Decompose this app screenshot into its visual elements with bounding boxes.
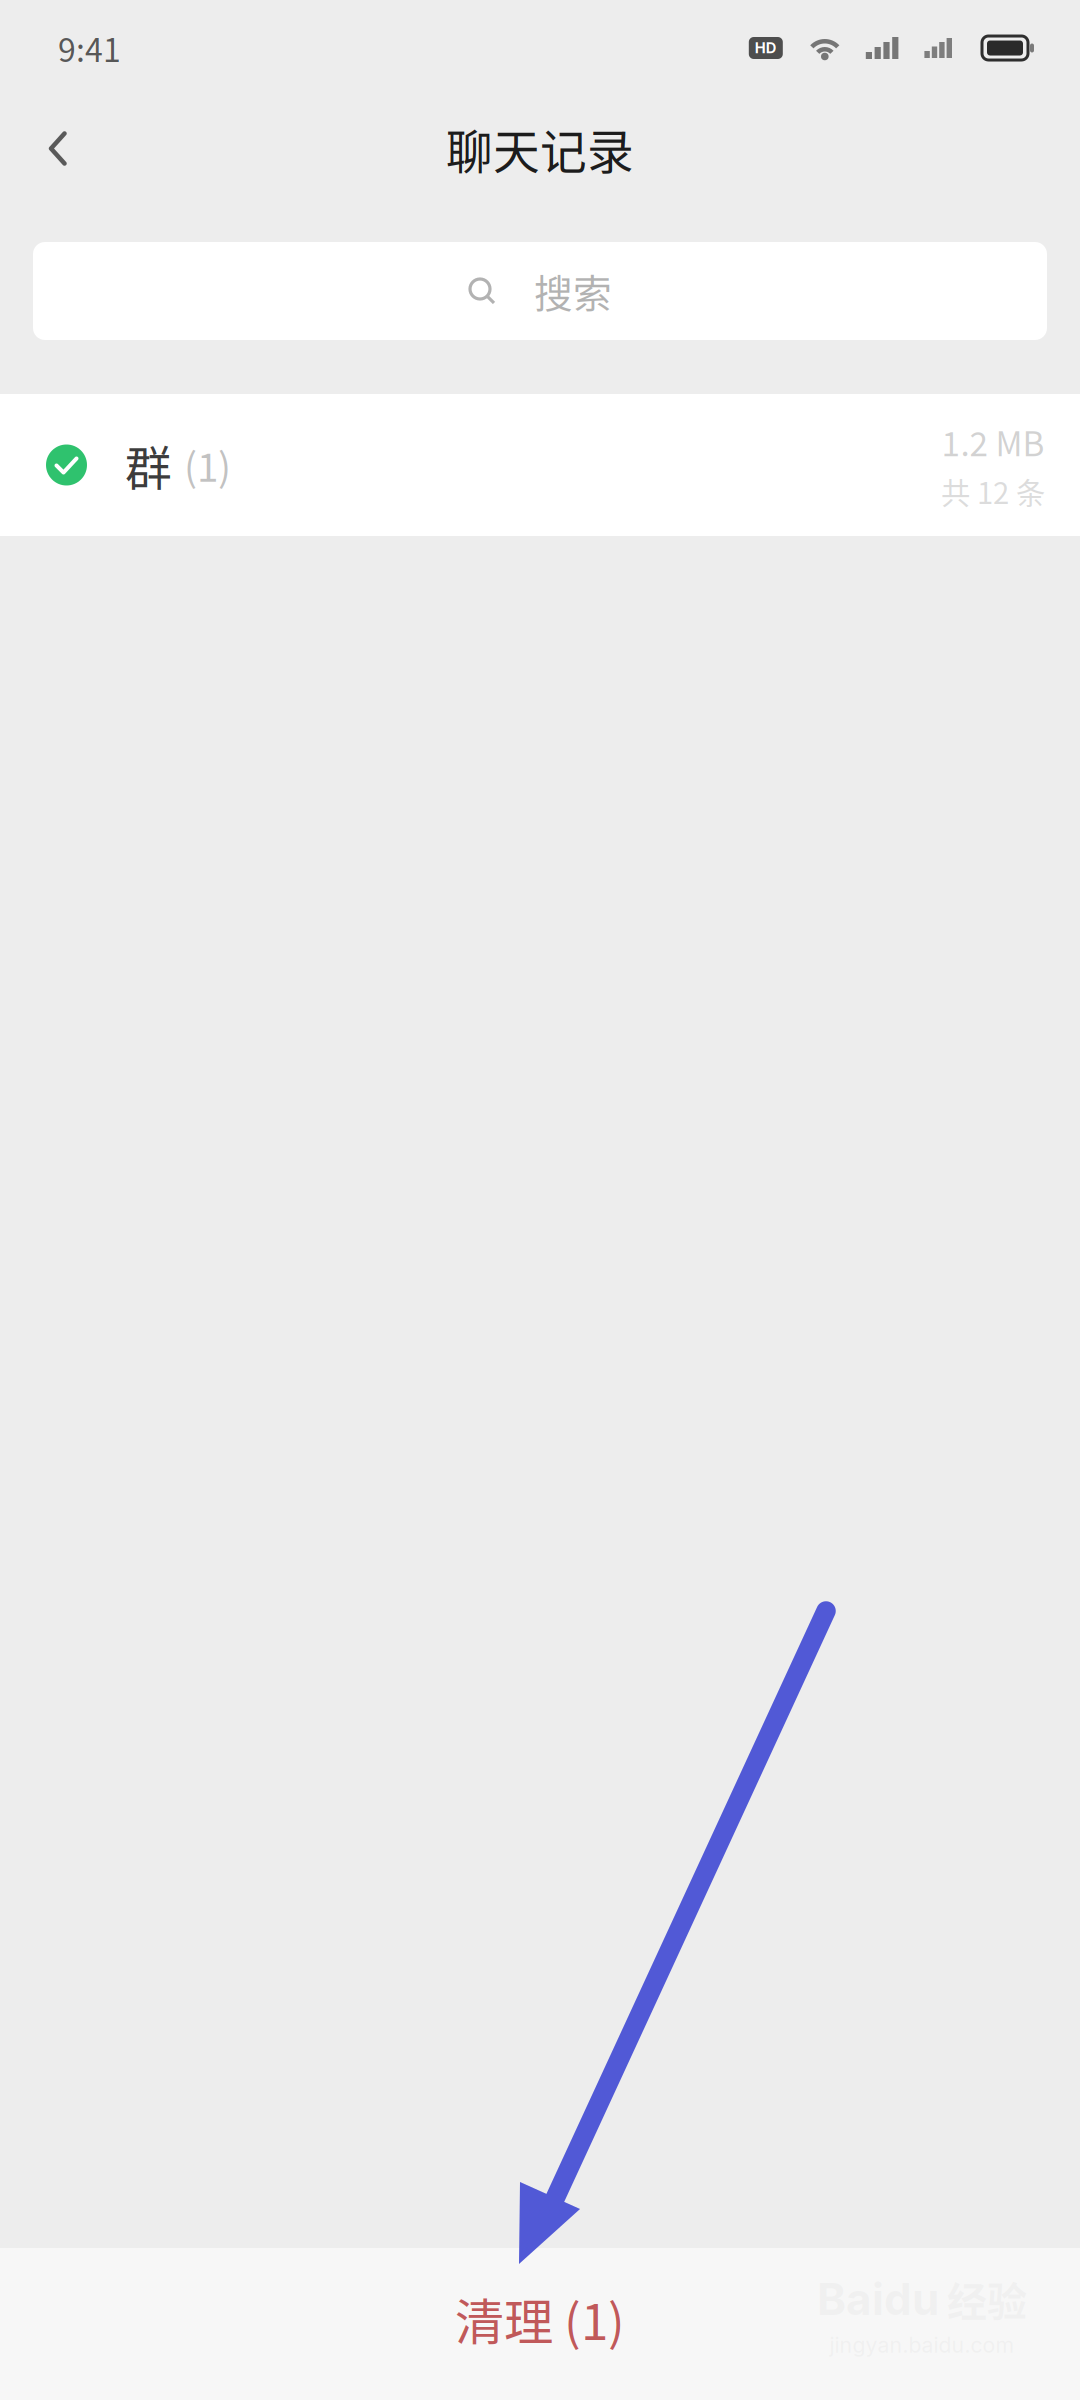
staticText: 9:41 [58,25,121,71]
button[interactable]: 群 [0,394,1080,536]
button[interactable]: 清理 (1) [0,2248,1080,2400]
staticText: 群 [125,431,172,499]
staticText: 经验 [947,2270,1027,2328]
staticText: 共 12 条 [941,470,1045,512]
staticText: 清理 (1) [455,2283,625,2354]
staticText: (1) [184,437,231,493]
button[interactable]: 返回 [13,96,103,201]
button[interactable]: 搜索 [33,242,1047,340]
staticText: Baidu [817,2272,939,2326]
staticText: 聊天记录 [446,115,634,182]
staticText: HD [755,39,777,57]
staticText: 1.2 MB [941,418,1044,466]
staticText: 搜索 [534,263,612,319]
